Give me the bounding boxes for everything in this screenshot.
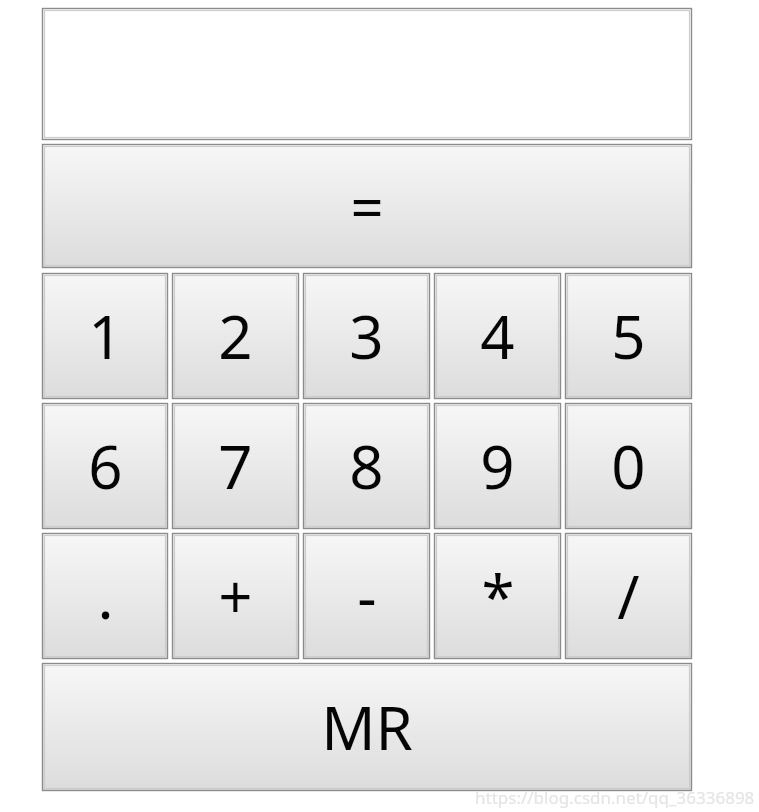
button[interactable]: MR: [42, 663, 692, 791]
staticText: 5: [611, 295, 646, 377]
staticText: 6: [88, 425, 123, 507]
button[interactable]: /: [565, 533, 692, 659]
staticText: 3: [349, 295, 384, 377]
button[interactable]: 7: [172, 403, 299, 529]
staticText: 8: [349, 425, 384, 507]
staticText: .: [97, 555, 114, 637]
staticText: MR: [321, 686, 413, 768]
staticText: 1: [88, 295, 123, 377]
button[interactable]: 4: [434, 273, 561, 399]
staticText: *: [481, 555, 515, 637]
button[interactable]: -: [303, 533, 430, 659]
staticText: /: [617, 555, 640, 637]
staticText: 7: [218, 425, 253, 507]
staticText: 0: [611, 425, 646, 507]
button[interactable]: 0: [565, 403, 692, 529]
button[interactable]: .: [42, 533, 168, 659]
button[interactable]: *: [434, 533, 561, 659]
button[interactable]: 8: [303, 403, 430, 529]
button[interactable]: 6: [42, 403, 168, 529]
staticText: 4: [480, 295, 515, 377]
staticText: 9: [480, 425, 515, 507]
staticText: -: [357, 555, 377, 637]
staticText: 2: [218, 295, 253, 377]
button[interactable]: 5: [565, 273, 692, 399]
button[interactable]: +: [172, 533, 299, 659]
button[interactable]: 3: [303, 273, 430, 399]
button[interactable]: 9: [434, 403, 561, 529]
button[interactable]: =: [42, 144, 692, 268]
button[interactable]: 1: [42, 273, 168, 399]
button[interactable]: 2: [172, 273, 299, 399]
staticText: https://blog.csdn.net/qq_36336898: [475, 786, 755, 809]
staticText: +: [218, 555, 253, 637]
staticText: =: [350, 167, 384, 246]
